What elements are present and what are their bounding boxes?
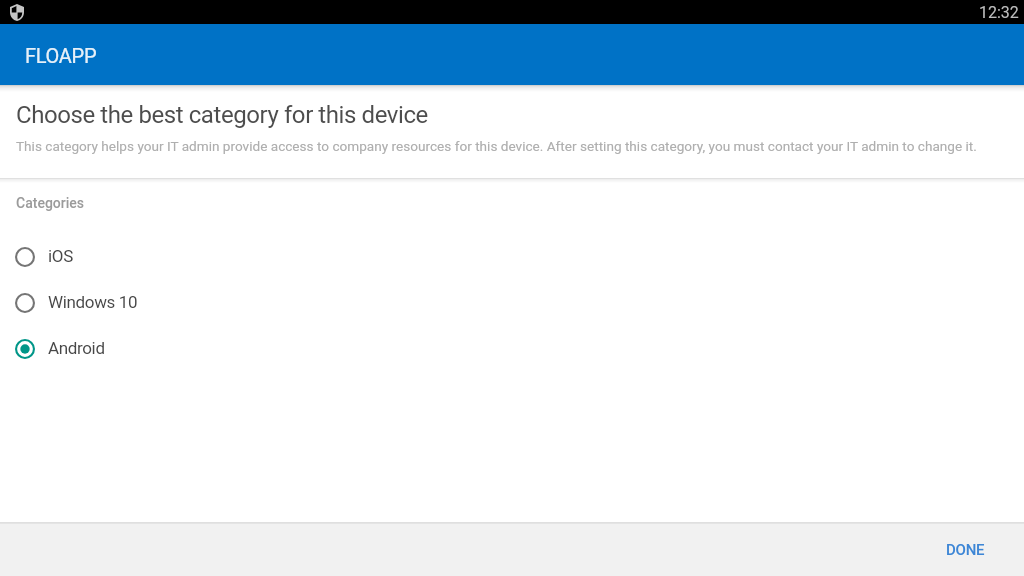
staticText: FLOAPP xyxy=(25,44,97,67)
staticText: Windows 10 xyxy=(48,292,138,312)
staticText: DONE xyxy=(946,541,985,559)
staticText: Choose the best category for this device xyxy=(16,101,428,129)
staticText: Categories xyxy=(16,195,85,211)
toggle[interactable]: iOS xyxy=(0,234,1024,280)
toggle[interactable]: Windows 10 xyxy=(0,280,1024,326)
toggle[interactable]: Android xyxy=(0,326,1024,372)
staticText: 12:32 xyxy=(979,3,1019,22)
staticText: iOS xyxy=(48,246,73,266)
button[interactable]: DONE xyxy=(934,533,997,567)
staticText: Android xyxy=(48,338,105,358)
other: Device secured xyxy=(10,4,24,21)
staticText: This category helps your IT admin provid… xyxy=(16,138,977,154)
